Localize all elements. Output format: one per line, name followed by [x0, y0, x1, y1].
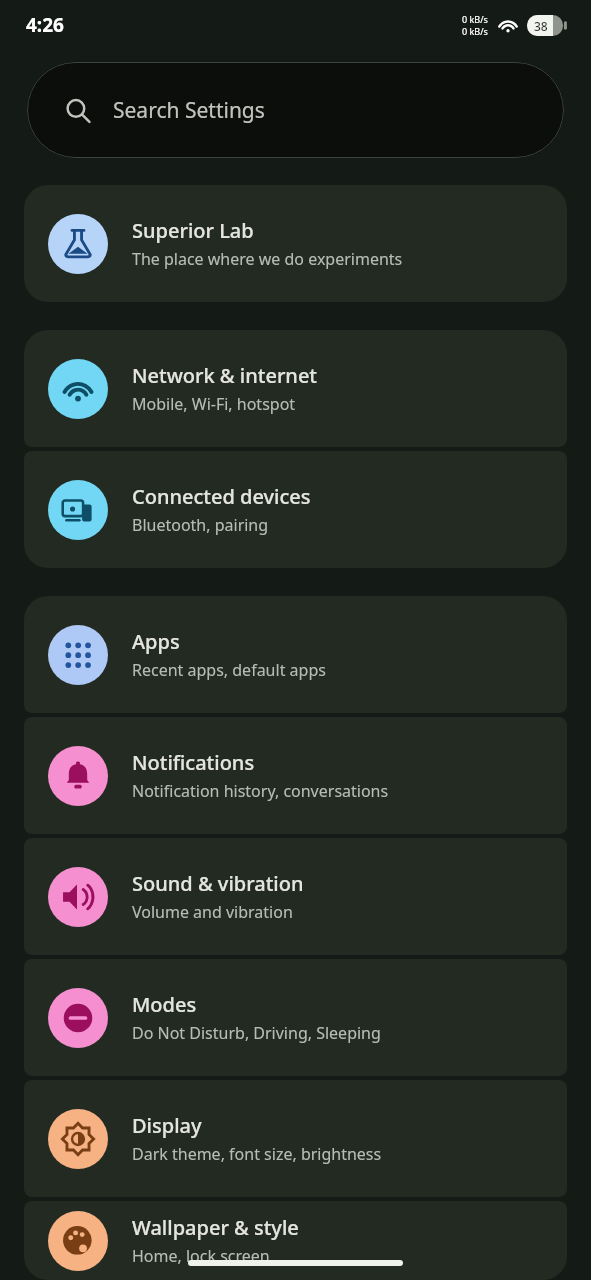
- button[interactable]: Search Settings: [27, 62, 564, 158]
- other: Display: [61, 1122, 95, 1156]
- staticText: Recent apps, default apps: [132, 659, 326, 681]
- staticText: Connected devices: [132, 483, 311, 510]
- staticText: Dark theme, font size, brightness: [132, 1143, 382, 1165]
- staticText: Display: [132, 1112, 202, 1139]
- button[interactable]: Notifications: [24, 717, 567, 834]
- staticText: Notifications: [132, 749, 255, 776]
- other: Connected devices: [61, 493, 95, 527]
- staticText: Home, lock screen: [132, 1245, 270, 1267]
- staticText: Mobile, Wi-Fi, hotspot: [132, 393, 296, 415]
- other: Network and internet: [61, 372, 95, 406]
- staticText: Notification history, conversations: [132, 780, 389, 802]
- button[interactable]: Modes: [24, 959, 567, 1076]
- button[interactable]: Connected devices: [24, 451, 567, 568]
- staticText: Bluetooth, pairing: [132, 514, 269, 536]
- button[interactable]: Superior Lab: [24, 185, 567, 302]
- staticText: 4:26: [26, 12, 64, 38]
- button[interactable]: Display: [24, 1080, 567, 1197]
- other: Notifications: [61, 759, 95, 793]
- staticText: Network & internet: [132, 362, 318, 389]
- button[interactable]: Sound and vibration: [24, 838, 567, 955]
- button[interactable]: Apps: [24, 596, 567, 713]
- other: Wallpaper and style: [61, 1224, 95, 1258]
- staticText: Do Not Disturb, Driving, Sleeping: [132, 1022, 381, 1044]
- button[interactable]: Network and internet: [24, 330, 567, 447]
- other: Superior Lab: [61, 227, 95, 261]
- staticText: Apps: [132, 628, 180, 655]
- button[interactable]: Wallpaper and style: [24, 1201, 567, 1280]
- staticText: Sound & vibration: [132, 870, 304, 897]
- staticText: Search Settings: [113, 96, 265, 125]
- staticText: 0 kB/s: [462, 25, 488, 37]
- staticText: The place where we do experiments: [132, 248, 403, 270]
- staticText: 0 kB/s: [462, 13, 488, 25]
- staticText: 38: [534, 18, 548, 34]
- other: Apps: [61, 638, 95, 672]
- staticText: Wallpaper & style: [132, 1214, 299, 1241]
- staticText: Superior Lab: [132, 217, 254, 244]
- other: Sound and vibration: [61, 880, 95, 914]
- staticText: Modes: [132, 991, 197, 1018]
- staticText: Volume and vibration: [132, 901, 293, 923]
- other: Modes: [61, 1001, 95, 1035]
